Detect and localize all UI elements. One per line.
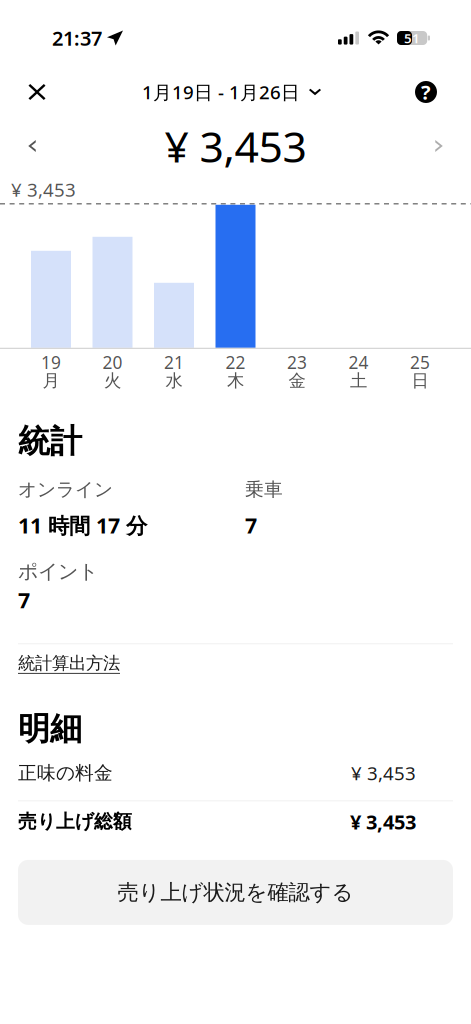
staticText: 19 [41,351,61,374]
button[interactable]: 統計算出方法 [18,644,120,679]
button[interactable]: 閉じる [15,70,59,114]
staticText: 21 [164,351,184,374]
staticText: ¥ 3,453 [11,177,76,202]
staticText: 木 [227,370,244,391]
staticText: ¥ 3,453 [351,761,416,785]
staticText: 20 [102,351,122,374]
staticText: 23 [287,351,307,374]
staticText: 11 時間 17 分 [18,511,147,539]
staticText: 51 [404,29,420,47]
staticText: 25 [410,351,430,374]
button[interactable]: ヘルプ [404,70,448,114]
staticText: 売り上げ状況を確認する [117,879,353,905]
staticText: 正味の料金 [18,761,113,784]
staticText: 火 [104,370,121,391]
staticText: 水 [165,370,182,391]
button[interactable]: 次の週 [417,124,461,168]
staticText: 金 [288,370,305,391]
staticText: 明細 [18,709,82,748]
staticText: ? [421,79,431,105]
staticText: 7 [18,586,30,614]
staticText: 24 [348,351,368,374]
button[interactable]: 1月19日 - 1月26日 [142,76,321,108]
staticText: 日 [411,370,428,391]
staticText: 統計 [18,422,82,461]
staticText: ポイント [18,559,98,584]
staticText: 22 [225,351,245,374]
staticText: 21:37 [52,25,102,51]
button[interactable]: 前の週 [10,124,54,168]
staticText: 土 [350,370,367,391]
staticText: ¥ 3,453 [350,808,416,835]
staticText: 月 [42,370,59,391]
button[interactable]: 売り上げ状況を確認する [18,860,453,925]
staticText: オンライン [18,478,113,501]
staticText: 統計算出方法 [18,653,120,674]
staticText: 7 [245,511,257,539]
staticText: 売り上げ総額 [18,810,132,833]
staticText: 1月19日 - 1月26日 [142,80,300,104]
staticText: ¥ 3,453 [164,118,306,174]
staticText: 乗車 [245,478,283,501]
